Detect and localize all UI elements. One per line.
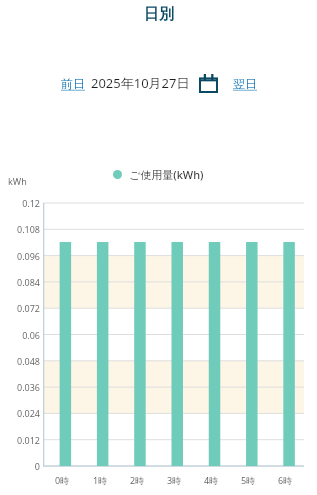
button[interactable]: 翌日 [232, 75, 258, 92]
staticText: 3時 [167, 474, 182, 486]
staticText: 0.036 [16, 381, 40, 393]
staticText: 1時 [93, 474, 108, 486]
button[interactable]: カレンダー [197, 72, 219, 94]
staticText: 翌日 [233, 76, 257, 91]
staticText: 0.096 [16, 250, 40, 262]
staticText: 日別 [144, 5, 174, 24]
staticText: 0.024 [16, 407, 40, 419]
staticText: 0時 [55, 474, 70, 486]
staticText: 4時 [204, 474, 219, 486]
staticText: 0.108 [16, 223, 40, 235]
staticText: 5時 [241, 474, 256, 486]
staticText: 前日 [61, 76, 85, 91]
staticText: ご使用量(kWh) [129, 167, 204, 182]
staticText: 0.048 [16, 355, 40, 367]
staticText: 0.084 [16, 276, 40, 288]
staticText: 0.072 [16, 302, 40, 314]
staticText: 0.012 [16, 434, 40, 446]
staticText: 6時 [278, 474, 293, 486]
button[interactable]: 前日 [60, 75, 86, 92]
staticText: kWh [8, 175, 27, 187]
staticText: 2時 [130, 474, 145, 486]
staticText: 0 [34, 460, 40, 472]
staticText: 0.06 [22, 329, 40, 341]
staticText: 0.12 [22, 197, 40, 209]
staticText: 2025年10月27日 [91, 74, 190, 92]
